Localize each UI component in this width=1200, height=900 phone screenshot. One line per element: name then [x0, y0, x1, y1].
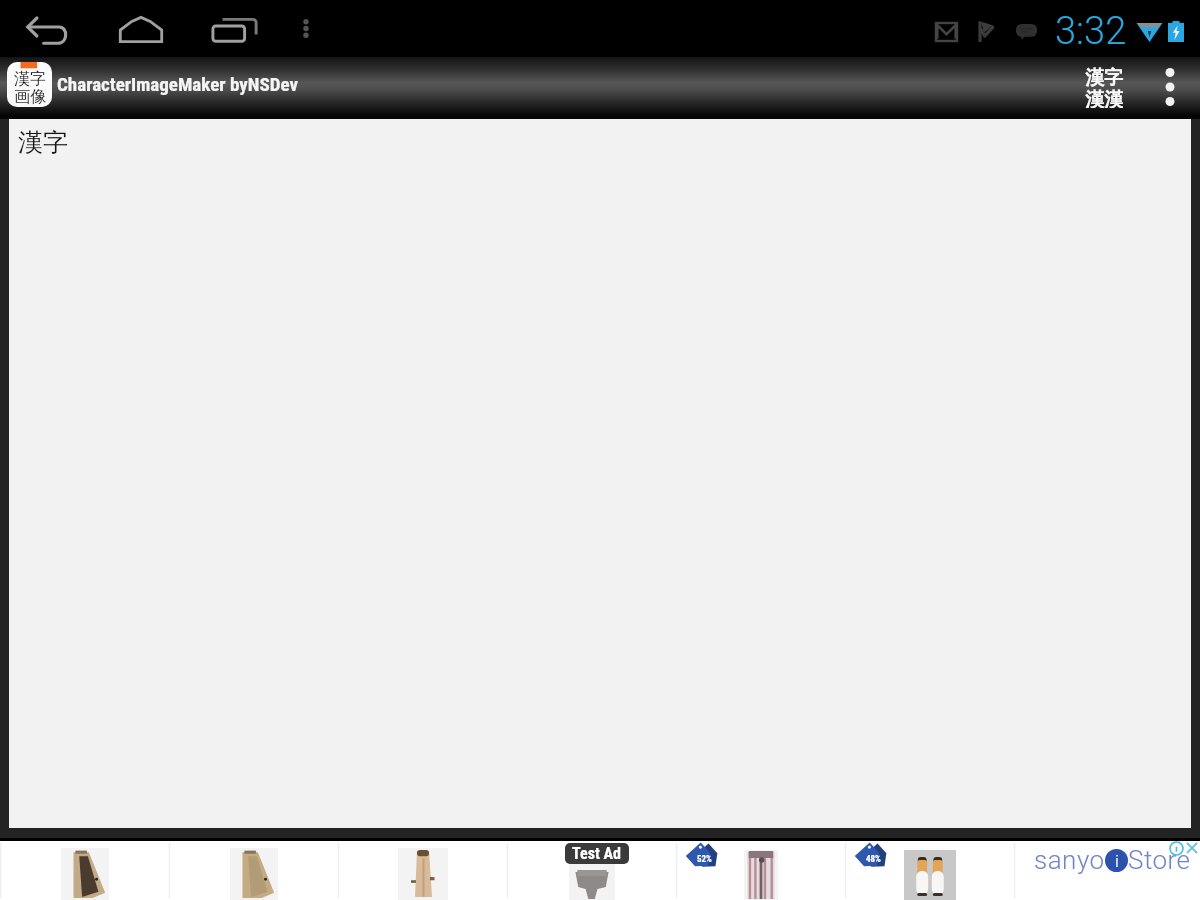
staticText: 漢字: [14, 69, 46, 89]
button[interactable]: More options: [1140, 57, 1200, 116]
button[interactable]: Home: [94, 0, 188, 57]
staticText: i: [1115, 851, 1119, 871]
button[interactable]: 漢字: [0, 57, 298, 116]
staticText: 48%: [866, 854, 881, 865]
staticText: CharacterImageMaker byNSDev: [57, 73, 298, 95]
staticText: 漢字: [1085, 66, 1123, 90]
staticText: Store: [1128, 845, 1191, 875]
button[interactable]: Recent apps: [188, 0, 282, 57]
staticText: Test Ad: [572, 844, 622, 863]
staticText: 3:32: [1055, 9, 1127, 54]
staticText: sanyo: [1034, 845, 1105, 875]
button[interactable]: Menu: [282, 0, 370, 57]
staticText: 漢字: [18, 127, 68, 158]
staticText: 画像: [14, 87, 46, 107]
button[interactable]: sanyo: [1014, 841, 1200, 900]
button[interactable]: [0, 841, 169, 900]
button[interactable]: 52%: [676, 841, 845, 900]
staticText: 52%: [697, 854, 712, 865]
button[interactable]: [169, 841, 338, 900]
staticText: 漢漢: [1085, 88, 1123, 108]
button[interactable]: Kanji characters: [1068, 57, 1140, 116]
button[interactable]: 48%: [845, 841, 1014, 900]
button[interactable]: Back: [0, 0, 94, 57]
button[interactable]: Close ad: [1185, 841, 1199, 855]
button[interactable]: [338, 841, 507, 900]
button[interactable]: [507, 841, 676, 900]
button[interactable]: Ad choices: [1169, 841, 1184, 856]
